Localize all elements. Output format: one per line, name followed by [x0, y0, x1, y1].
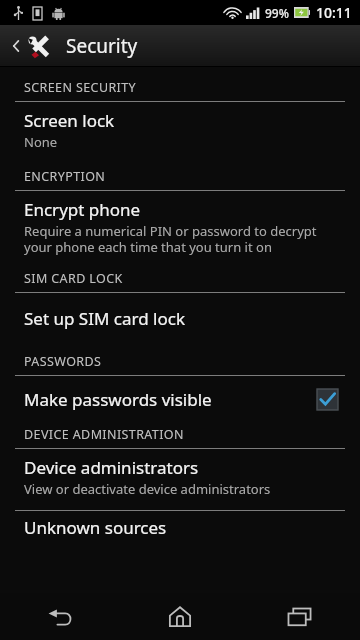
button[interactable]: Recent apps — [240, 593, 360, 640]
staticText: Set up SIM card lock — [24, 307, 185, 330]
staticText: Security — [66, 33, 138, 59]
staticText: Encrypt phone — [24, 198, 141, 221]
staticText: View or deactivate device administrators — [24, 480, 271, 498]
staticText: Make passwords visible — [24, 388, 317, 411]
button[interactable]: Set up SIM card lock — [0, 293, 360, 350]
staticText: Unknown sources — [24, 516, 167, 537]
staticText: Require a numerical PIN or password to d… — [24, 222, 317, 255]
button[interactable]: Unknown sources — [0, 511, 360, 537]
button[interactable]: Encrypt phone — [0, 191, 360, 267]
staticText: SCREEN SECURITY — [24, 79, 137, 96]
staticText: Device administrators — [24, 456, 199, 479]
staticText: None — [24, 133, 58, 151]
staticText: PASSWORDS — [24, 353, 102, 370]
button[interactable]: Home — [120, 593, 240, 640]
button[interactable]: Back — [0, 593, 120, 640]
button[interactable]: Make passwords visible — [0, 376, 360, 423]
staticText: ENCRYPTION — [24, 168, 106, 185]
staticText: SIM CARD LOCK — [24, 270, 123, 287]
staticText: 99% — [265, 5, 289, 21]
staticText: Screen lock — [24, 109, 115, 132]
button[interactable]: Screen lock — [0, 102, 360, 165]
staticText: 10:11 — [316, 3, 352, 22]
button[interactable]: Device administrators — [0, 449, 360, 510]
button[interactable]: Navigate up — [8, 29, 55, 63]
staticText: DEVICE ADMINISTRATION — [24, 426, 184, 443]
